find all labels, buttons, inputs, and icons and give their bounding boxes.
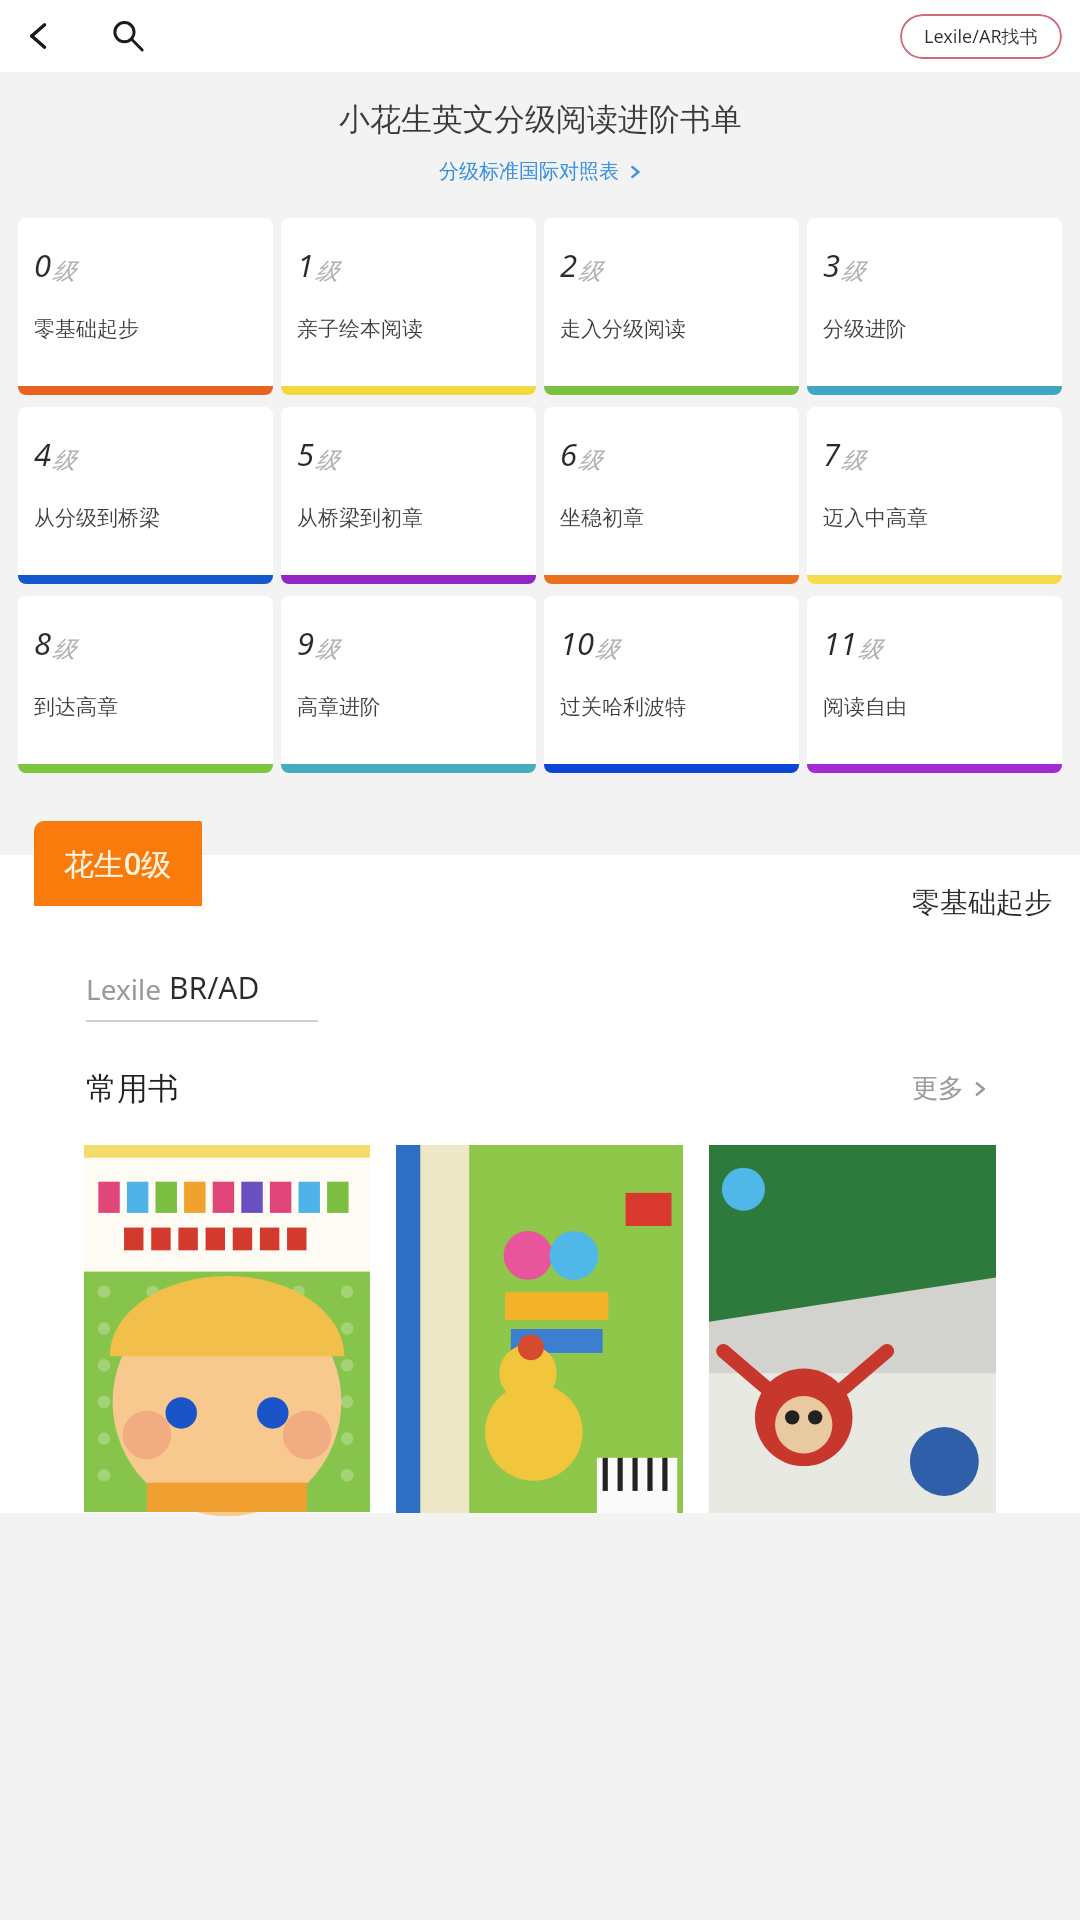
staticText: 2 xyxy=(560,244,578,286)
staticText: 亲子绘本阅读 xyxy=(297,316,423,342)
staticText: 6 xyxy=(560,433,578,475)
button[interactable]: 1 xyxy=(281,218,536,395)
button[interactable]: 7 xyxy=(807,407,1062,584)
staticText: 分级进阶 xyxy=(823,316,907,342)
staticText: 级 xyxy=(841,446,864,475)
button[interactable]: 11 xyxy=(807,596,1062,773)
staticText: 更多 xyxy=(912,1072,964,1105)
staticText: 3 xyxy=(823,244,841,286)
staticText: 级 xyxy=(52,257,75,286)
staticText: 分级标准国际对照表 xyxy=(439,159,619,184)
button[interactable] xyxy=(396,1145,683,1513)
staticText: 走入分级阅读 xyxy=(560,316,686,342)
staticText: 4 xyxy=(34,433,52,475)
staticText: 过关哈利波特 xyxy=(560,694,686,720)
staticText: 常用书 xyxy=(86,1069,179,1108)
button[interactable]: 0 xyxy=(18,218,273,395)
staticText: 10 xyxy=(560,622,595,664)
button[interactable]: 3 xyxy=(807,218,1062,395)
button[interactable]: 8 xyxy=(18,596,273,773)
button[interactable]: 4 xyxy=(18,407,273,584)
button[interactable]: Back xyxy=(10,7,68,65)
staticText: 坐稳初章 xyxy=(560,505,644,531)
staticText: 8 xyxy=(34,622,52,664)
staticText: 级 xyxy=(315,635,338,664)
staticText: 从桥梁到初章 xyxy=(297,505,423,531)
staticText: 1 xyxy=(297,244,315,286)
staticText: 花生0级 xyxy=(64,843,172,884)
staticText: 级 xyxy=(858,635,881,664)
staticText: 级 xyxy=(595,635,618,664)
staticText: 7 xyxy=(823,433,841,475)
staticText: 级 xyxy=(52,446,75,475)
button[interactable]: 10 xyxy=(544,596,799,773)
button[interactable]: 分级标准国际对照表 xyxy=(429,155,652,188)
staticText: 级 xyxy=(578,446,601,475)
button[interactable]: 更多 xyxy=(906,1066,994,1111)
staticText: Lexile xyxy=(86,970,169,1008)
staticText: 零基础起步 xyxy=(912,885,1052,920)
staticText: 0 xyxy=(34,244,52,286)
button[interactable]: 5 xyxy=(281,407,536,584)
staticText: 小花生英文分级阅读进阶书单 xyxy=(339,100,742,139)
staticText: BR/AD xyxy=(169,967,260,1008)
button[interactable]: 9 xyxy=(281,596,536,773)
staticText: 11 xyxy=(823,622,858,664)
staticText: 从分级到桥梁 xyxy=(34,505,160,531)
staticText: 级 xyxy=(578,257,601,286)
button[interactable]: Search xyxy=(98,7,156,65)
button[interactable] xyxy=(709,1145,996,1513)
staticText: 零基础起步 xyxy=(34,316,139,342)
staticText: Lexile/AR找书 xyxy=(924,24,1038,49)
button[interactable]: 2 xyxy=(544,218,799,395)
button[interactable]: Lexile/AR找书 xyxy=(900,14,1062,59)
staticText: 9 xyxy=(297,622,315,664)
staticText: 级 xyxy=(315,257,338,286)
staticText: 级 xyxy=(841,257,864,286)
staticText: 高章进阶 xyxy=(297,694,381,720)
staticText: 级 xyxy=(52,635,75,664)
button[interactable]: 6 xyxy=(544,407,799,584)
staticText: 阅读自由 xyxy=(823,694,907,720)
staticText: 到达高章 xyxy=(34,694,118,720)
button[interactable]: 花生0级 xyxy=(34,821,202,906)
staticText: 迈入中高章 xyxy=(823,505,928,531)
button[interactable] xyxy=(84,1145,370,1512)
staticText: 5 xyxy=(297,433,315,475)
staticText: 级 xyxy=(315,446,338,475)
